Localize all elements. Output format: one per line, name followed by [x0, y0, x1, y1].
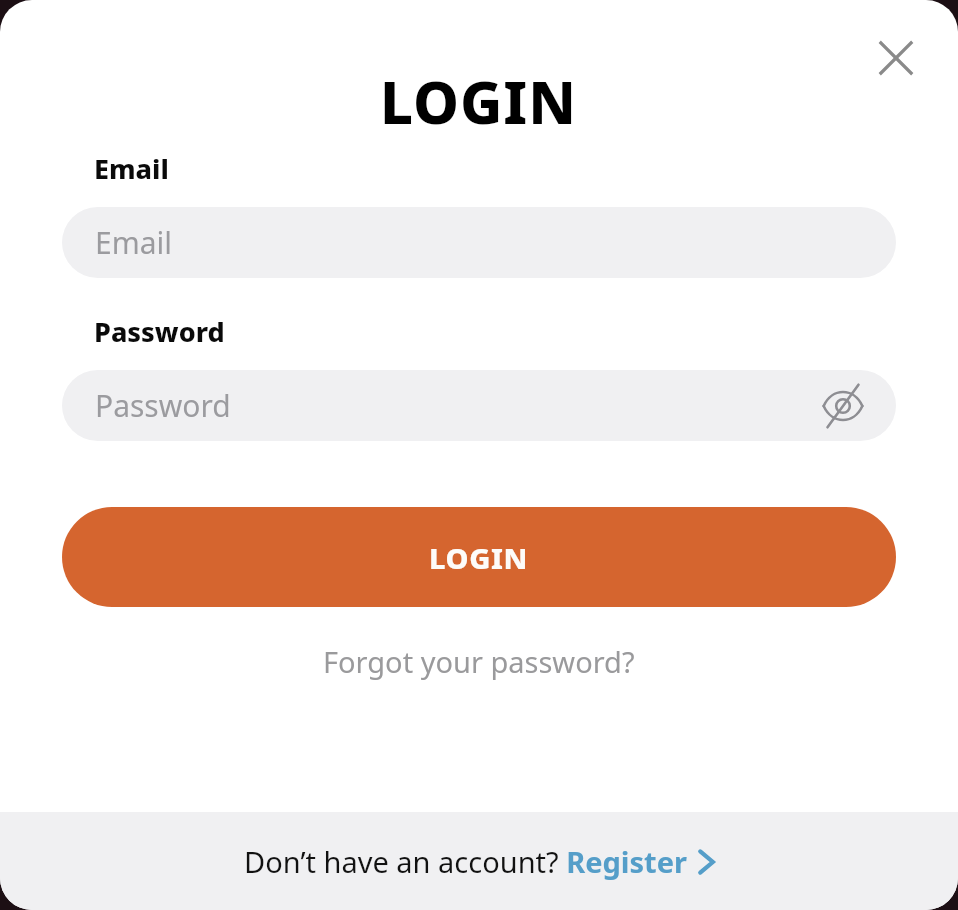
button[interactable]: Close [864, 26, 928, 90]
staticText: Password [95, 385, 231, 426]
button[interactable]: Forgot your password? [0, 631, 958, 691]
button[interactable]: Email [62, 207, 896, 278]
staticText: Password [94, 313, 225, 350]
staticText: Email [95, 222, 173, 263]
button[interactable]: LOGIN [62, 507, 896, 607]
staticText: Email [94, 150, 169, 187]
staticText: Don’t have an account? Register [244, 842, 687, 881]
staticText: LOGIN [429, 538, 529, 577]
button[interactable]: Show password [814, 377, 872, 435]
button[interactable]: Password [62, 370, 896, 441]
staticText: LOGIN [380, 62, 578, 141]
staticText: Forgot your password? [323, 642, 635, 681]
button[interactable]: Don’t have an account? Register [0, 812, 958, 910]
